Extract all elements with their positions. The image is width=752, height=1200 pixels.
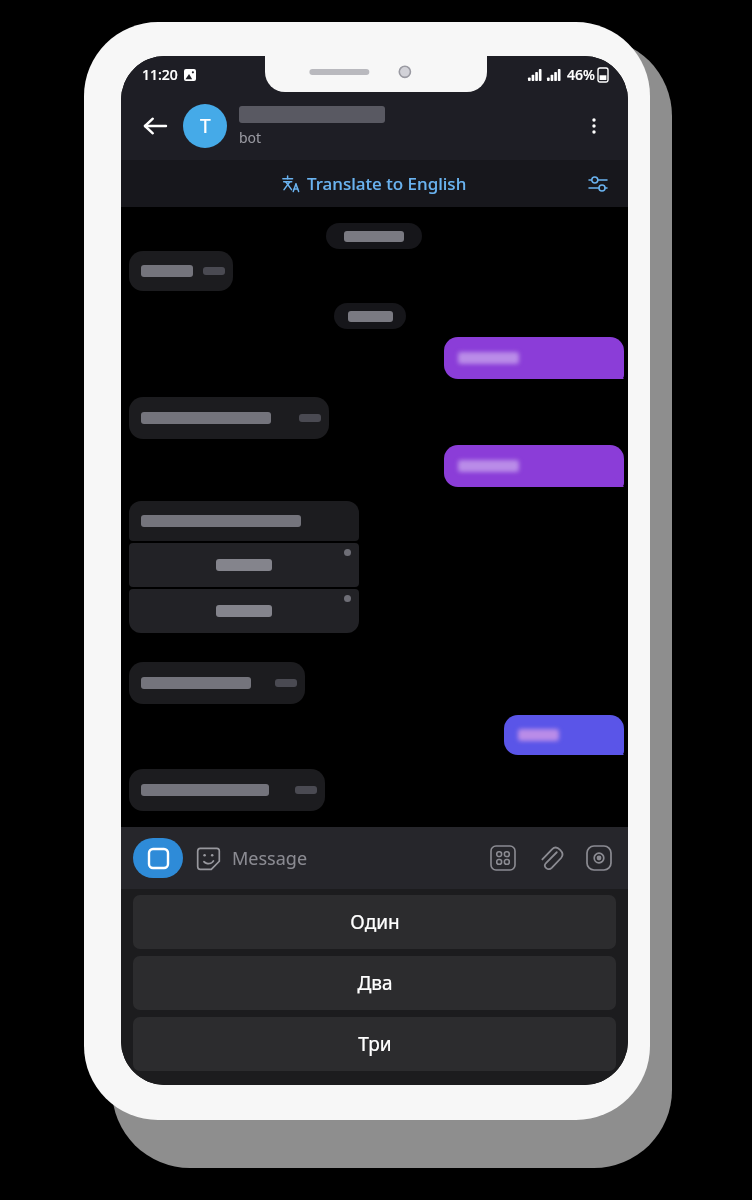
button[interactable] (129, 769, 325, 811)
button[interactable] (334, 303, 406, 329)
staticText: bot (239, 128, 262, 147)
button[interactable]: Translate to English (282, 172, 467, 195)
button[interactable] (129, 543, 359, 587)
button[interactable] (504, 715, 624, 755)
button[interactable]: Translation settings (580, 166, 616, 202)
button[interactable]: Attach (534, 841, 568, 875)
button[interactable]: More options (574, 106, 614, 146)
button[interactable]: Stickers (193, 843, 223, 873)
staticText: 46% (567, 65, 595, 84)
staticText: 11:20 (142, 65, 178, 84)
staticText: T (200, 113, 211, 139)
button[interactable] (129, 589, 359, 633)
staticText: Три (358, 1031, 392, 1057)
button[interactable]: Два (133, 956, 616, 1010)
button[interactable] (444, 445, 624, 487)
button[interactable]: Bot menu (133, 838, 183, 878)
button[interactable] (326, 223, 422, 249)
staticText: Два (357, 970, 393, 996)
button[interactable]: Три (133, 1017, 616, 1071)
staticText: Message (232, 846, 486, 871)
button[interactable] (129, 397, 329, 439)
button[interactable] (129, 251, 233, 291)
button[interactable] (444, 337, 624, 379)
button[interactable]: Один (133, 895, 616, 949)
button[interactable]: Back (135, 106, 175, 146)
button[interactable]: Bot commands (486, 841, 520, 875)
button[interactable]: T (183, 104, 227, 148)
button[interactable] (129, 662, 305, 704)
staticText: Translate to English (307, 172, 467, 195)
button[interactable]: Camera (582, 841, 616, 875)
button[interactable]: bot (239, 106, 574, 147)
staticText: Один (350, 909, 400, 935)
button[interactable] (129, 501, 359, 633)
